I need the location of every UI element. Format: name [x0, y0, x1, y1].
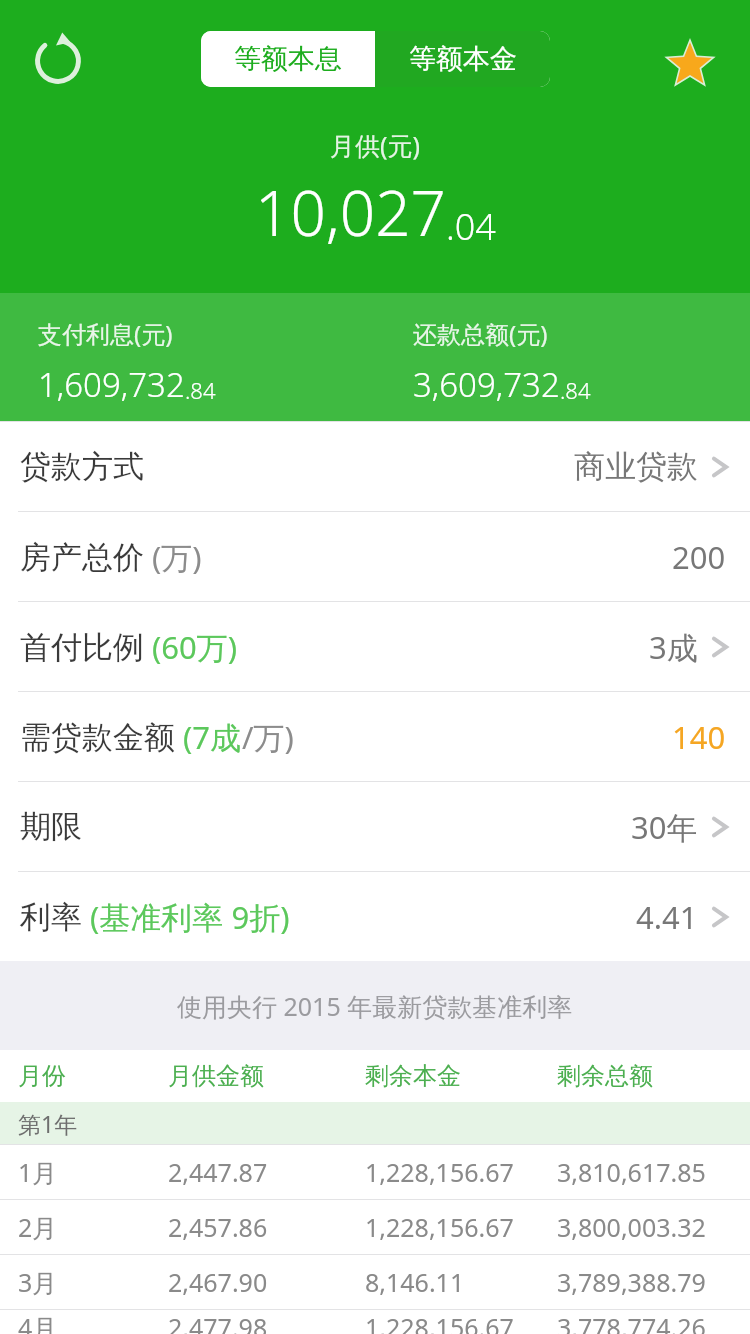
staticText: 1,228,156.67	[365, 1155, 514, 1189]
staticText: 3,778,774.26	[557, 1310, 706, 1334]
staticText: 2月	[18, 1210, 58, 1244]
staticText: 2,457.86	[168, 1210, 268, 1244]
button[interactable]: 首付比例	[0, 602, 750, 691]
staticText: 商业贷款	[574, 447, 698, 486]
staticText: /万)	[242, 716, 294, 758]
button[interactable]: 利率	[0, 872, 750, 961]
staticText: 200	[672, 536, 726, 578]
staticText: (万)	[144, 536, 202, 578]
staticText: 8,146.11	[365, 1265, 465, 1299]
button[interactable]: 需贷款金额	[0, 692, 750, 781]
staticText: 3,789,388.79	[557, 1265, 706, 1299]
button[interactable]: Favorite	[650, 25, 730, 105]
staticText: 10,027	[255, 170, 446, 254]
staticText: 140	[672, 716, 726, 758]
staticText: 月供(元)	[330, 128, 421, 162]
staticText: 支付利息(元)	[38, 317, 173, 350]
staticText: 剩余本金	[365, 1061, 461, 1091]
button[interactable]: 2月	[0, 1200, 750, 1254]
staticText: (7成	[175, 716, 242, 758]
button[interactable]: 1月	[0, 1145, 750, 1199]
staticText: 贷款方式	[20, 447, 144, 486]
button[interactable]: 等额本金	[375, 31, 550, 87]
staticText: 1,609,732	[38, 362, 185, 407]
staticText: 首付比例	[20, 628, 144, 667]
staticText: 1,228,156.67	[365, 1310, 514, 1334]
staticText: 3成	[649, 626, 698, 668]
button[interactable]: Reset	[22, 25, 94, 97]
staticText: 2,447.87	[168, 1155, 268, 1189]
staticText: 3,800,003.32	[557, 1210, 706, 1244]
button[interactable]: 等额本息	[201, 31, 375, 87]
staticText: 2,467.90	[168, 1265, 268, 1299]
staticText: 月份	[18, 1061, 66, 1091]
staticText: 利率	[20, 898, 82, 937]
staticText: 3,609,732	[413, 362, 560, 407]
staticText: 1月	[18, 1155, 58, 1189]
staticText: 3,810,617.85	[557, 1155, 706, 1189]
button[interactable]: 贷款方式	[0, 422, 750, 511]
staticText: (基准利率 9折)	[82, 896, 290, 938]
staticText: 等额本息	[234, 42, 342, 76]
staticText: 还款总额(元)	[413, 317, 548, 350]
button[interactable]: 期限	[0, 782, 750, 871]
staticText: 4月	[18, 1310, 58, 1334]
staticText: 30年	[631, 806, 698, 848]
staticText: 剩余总额	[557, 1061, 653, 1091]
staticText: 2,477.98	[168, 1310, 268, 1334]
staticText: 房产总价	[20, 538, 144, 577]
button[interactable]: 3月	[0, 1255, 750, 1309]
staticText: 第1年	[18, 1108, 78, 1139]
staticText: 使用央行 2015 年最新贷款基准利率	[177, 989, 573, 1023]
staticText: 期限	[20, 807, 82, 846]
staticText: 月供金额	[168, 1061, 264, 1091]
staticText: 4.41	[636, 896, 698, 938]
staticText: 等额本金	[409, 42, 517, 76]
staticText: (60万)	[144, 626, 238, 668]
staticText: 需贷款金额	[20, 718, 175, 757]
staticText: .84	[185, 375, 216, 405]
button[interactable]: 4月	[0, 1310, 750, 1334]
staticText: 1,228,156.67	[365, 1210, 514, 1244]
staticText: .84	[560, 375, 591, 405]
staticText: .04	[446, 202, 496, 251]
button[interactable]: 房产总价	[0, 512, 750, 601]
staticText: 3月	[18, 1265, 58, 1299]
